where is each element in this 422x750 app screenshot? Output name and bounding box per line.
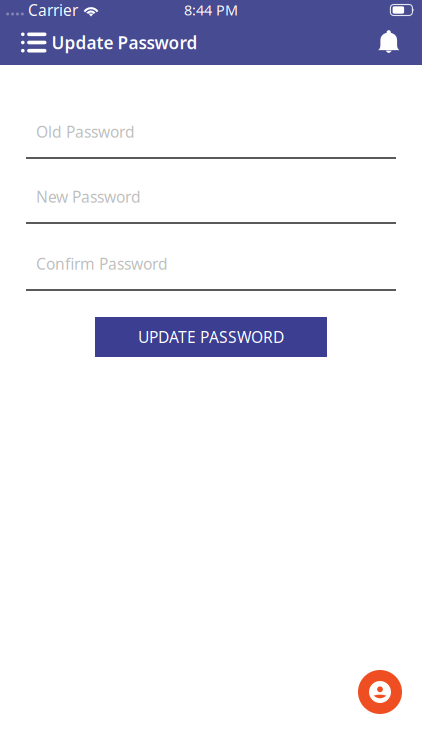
button[interactable]: Notifications <box>365 21 422 63</box>
button[interactable]: Menu <box>0 21 51 63</box>
button[interactable]: UPDATE PASSWORD <box>95 317 327 357</box>
staticText: New Password <box>36 186 141 207</box>
staticText: Old Password <box>36 121 135 142</box>
staticText: 8:44 PM <box>184 0 238 20</box>
staticText: Update Password <box>51 31 197 54</box>
button[interactable]: Profile <box>358 670 402 714</box>
staticText: UPDATE PASSWORD <box>138 326 284 348</box>
staticText: Carrier <box>28 0 78 21</box>
staticText: Confirm Password <box>36 253 168 274</box>
